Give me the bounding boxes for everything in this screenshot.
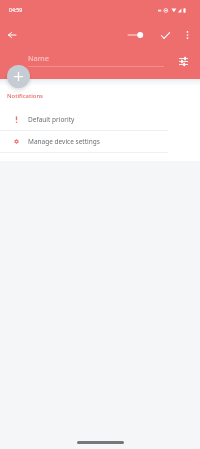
button[interactable]: Tune	[172, 50, 194, 72]
button[interactable]: Manage device settings	[0, 131, 200, 153]
button[interactable]: Add	[7, 65, 30, 88]
button[interactable]: Back	[0, 23, 24, 47]
button[interactable]: Default priority	[0, 109, 200, 131]
staticText: Name	[28, 53, 49, 63]
staticText: 04:59	[9, 6, 23, 13]
button[interactable]: Done	[153, 23, 177, 47]
staticText: Default priority	[28, 115, 75, 124]
staticText: Notifications	[7, 92, 43, 100]
button[interactable]: More options	[175, 23, 199, 47]
staticText: Manage device settings	[28, 137, 100, 146]
button[interactable]: Enabled	[124, 23, 146, 47]
